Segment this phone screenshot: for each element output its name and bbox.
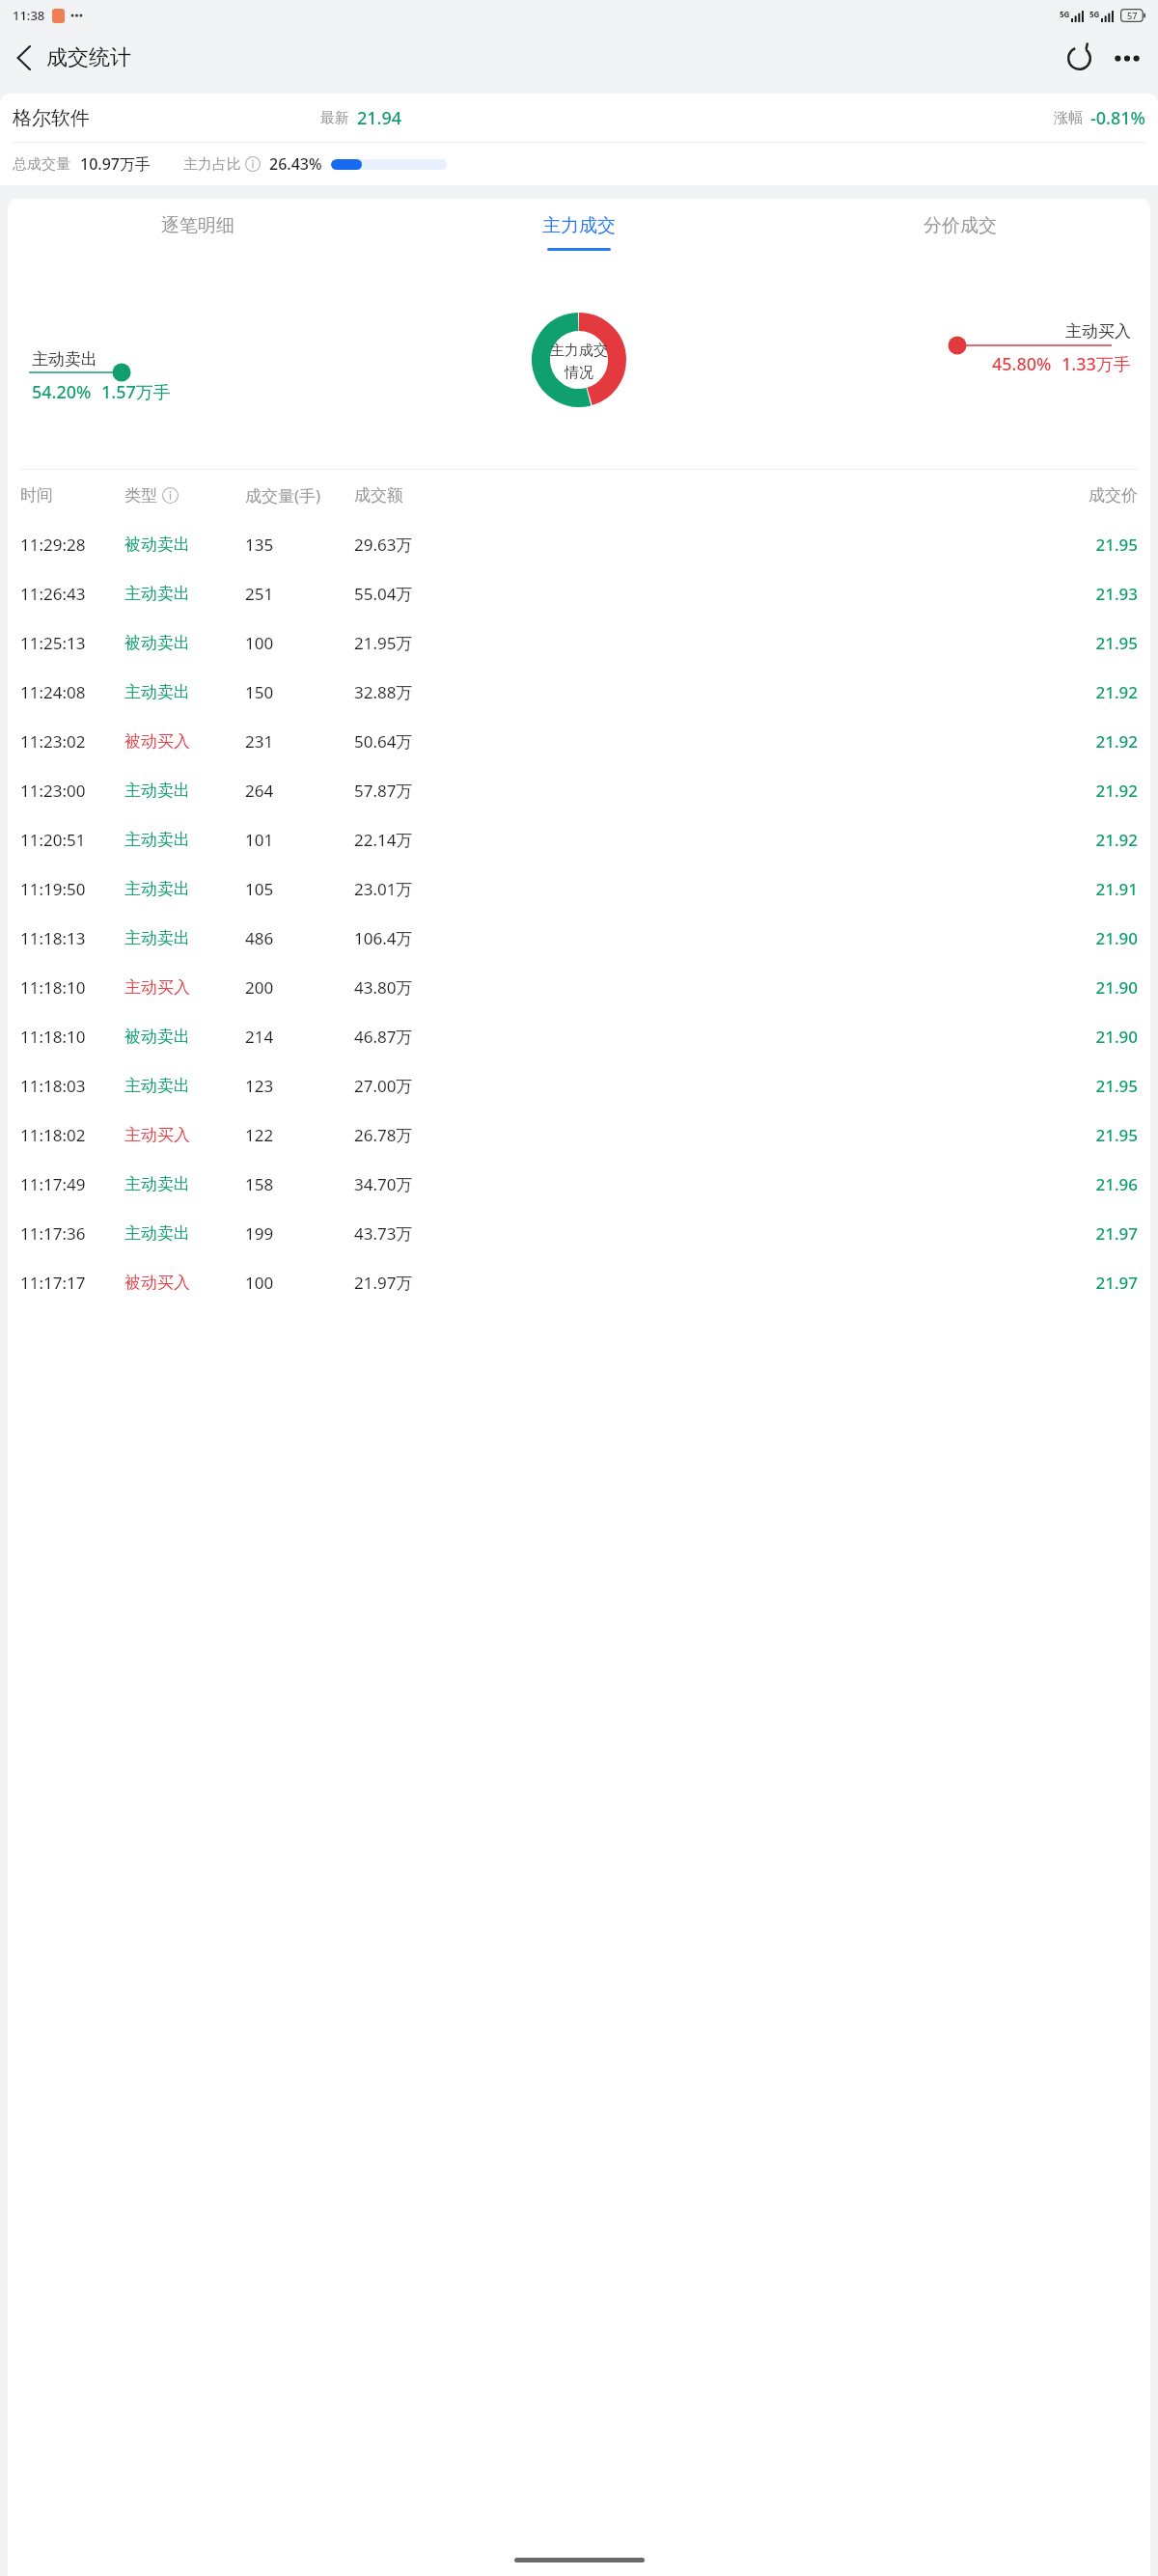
staticText: 32.88万 xyxy=(354,681,460,703)
staticText: 被动买入 xyxy=(124,731,245,752)
staticText: 21.95 xyxy=(460,534,1138,556)
button[interactable]: 11:24:08 xyxy=(8,668,1150,717)
staticText: 时间 xyxy=(20,485,124,506)
staticText: 成交量(手) xyxy=(245,484,354,507)
button[interactable]: 11:29:28 xyxy=(8,520,1150,569)
staticText: 21.95万 xyxy=(354,632,460,654)
staticText: 45.80% xyxy=(992,352,1052,376)
staticText: 231 xyxy=(245,730,354,753)
button[interactable]: 11:18:03 xyxy=(8,1061,1150,1110)
staticText: 分价成交 xyxy=(924,214,997,237)
staticText: 123 xyxy=(245,1075,354,1097)
staticText: 类型 xyxy=(124,485,157,506)
staticText: 11:18:03 xyxy=(20,1075,124,1097)
staticText: 格尔软件 xyxy=(13,106,90,130)
staticText: 11:17:36 xyxy=(20,1222,124,1245)
staticText: 214 xyxy=(245,1026,354,1048)
staticText: 1.33万手 xyxy=(1061,352,1131,376)
staticText: 主力成交 xyxy=(550,342,608,360)
staticText: 26.78万 xyxy=(354,1124,460,1146)
staticText: 43.73万 xyxy=(354,1222,460,1245)
staticText: 22.14万 xyxy=(354,829,460,851)
staticText: 21.92 xyxy=(460,829,1138,851)
staticText: 主动卖出 xyxy=(32,349,97,370)
staticText: 21.92 xyxy=(460,681,1138,703)
staticText: 21.90 xyxy=(460,1026,1138,1048)
staticText: 5G xyxy=(1089,9,1100,19)
staticText: 105 xyxy=(245,878,354,900)
staticText: 最新 xyxy=(320,109,349,127)
button[interactable]: 11:17:36 xyxy=(8,1209,1150,1258)
staticText: 122 xyxy=(245,1124,354,1146)
staticText: 486 xyxy=(245,927,354,949)
staticText: 11:23:00 xyxy=(20,780,124,802)
staticText: 21.96 xyxy=(460,1173,1138,1195)
staticText: 总成交量 xyxy=(13,155,70,174)
staticText: 1.57万手 xyxy=(101,380,171,404)
button[interactable]: 分价成交 xyxy=(769,199,1150,266)
button[interactable]: 11:18:10 xyxy=(8,1012,1150,1061)
staticText: 主动卖出 xyxy=(124,879,245,899)
staticText: 主动卖出 xyxy=(124,830,245,850)
staticText: 106.4万 xyxy=(354,927,460,949)
staticText: 26.43% xyxy=(269,153,322,175)
staticText: 主力占比 xyxy=(183,155,241,174)
button[interactable]: 11:17:49 xyxy=(8,1160,1150,1209)
staticText: 10.97万手 xyxy=(80,153,151,175)
staticText: 54.20% xyxy=(32,380,92,404)
staticText: 21.95 xyxy=(460,1124,1138,1146)
staticText: 21.90 xyxy=(460,927,1138,949)
staticText: 主动卖出 xyxy=(124,1076,245,1096)
button[interactable]: 11:20:51 xyxy=(8,815,1150,864)
button[interactable]: Refresh xyxy=(1055,34,1103,82)
staticText: 21.97 xyxy=(460,1222,1138,1245)
staticText: 主动卖出 xyxy=(124,928,245,948)
staticText: 21.97 xyxy=(460,1272,1138,1294)
staticText: 150 xyxy=(245,681,354,703)
staticText: 57.87万 xyxy=(354,780,460,802)
staticText: 101 xyxy=(245,829,354,851)
staticText: 被动买入 xyxy=(124,1273,245,1293)
staticText: 21.93 xyxy=(460,583,1138,605)
staticText: 主动卖出 xyxy=(124,584,245,604)
staticText: 11:25:13 xyxy=(20,632,124,654)
staticText: 43.80万 xyxy=(354,976,460,999)
staticText: 11:29:28 xyxy=(20,534,124,556)
button[interactable]: 主力成交 xyxy=(388,199,769,266)
staticText: 主动买入 xyxy=(124,1125,245,1145)
staticText: 成交额 xyxy=(354,485,460,506)
staticText: 100 xyxy=(245,1272,354,1294)
staticText: 21.91 xyxy=(460,878,1138,900)
staticText: 11:24:08 xyxy=(20,681,124,703)
staticText: 11:23:02 xyxy=(20,730,124,753)
staticText: 199 xyxy=(245,1222,354,1245)
staticText: 被动卖出 xyxy=(124,534,245,555)
staticText: 21.90 xyxy=(460,976,1138,999)
button[interactable]: 逐笔明细 xyxy=(8,199,388,266)
button[interactable]: 11:25:13 xyxy=(8,618,1150,668)
staticText: 21.94 xyxy=(357,106,402,130)
button[interactable]: 11:26:43 xyxy=(8,569,1150,618)
staticText: 29.63万 xyxy=(354,534,460,556)
button[interactable]: 11:23:02 xyxy=(8,717,1150,766)
staticText: 55.04万 xyxy=(354,583,460,605)
button[interactable]: 11:18:10 xyxy=(8,963,1150,1012)
button[interactable]: 11:18:13 xyxy=(8,914,1150,963)
button[interactable]: 11:18:02 xyxy=(8,1110,1150,1160)
button[interactable]: 11:19:50 xyxy=(8,864,1150,914)
staticText: 11:18:10 xyxy=(20,1026,124,1048)
staticText: 11:38 xyxy=(13,7,45,24)
staticText: 11:19:50 xyxy=(20,878,124,900)
staticText: 成交统计 xyxy=(46,44,131,71)
staticText: 46.87万 xyxy=(354,1026,460,1048)
staticText: 主力成交 xyxy=(542,214,616,237)
button[interactable]: More options xyxy=(1103,34,1151,82)
button[interactable]: 11:17:17 xyxy=(8,1258,1150,1307)
staticText: 57 xyxy=(1127,10,1138,21)
staticText: -0.81% xyxy=(1090,106,1145,130)
staticText: 251 xyxy=(245,583,354,605)
staticText: 主动买入 xyxy=(1065,321,1131,342)
staticText: 成交价 xyxy=(460,485,1138,506)
button[interactable]: 11:23:00 xyxy=(8,766,1150,815)
button[interactable]: Back xyxy=(0,35,46,81)
